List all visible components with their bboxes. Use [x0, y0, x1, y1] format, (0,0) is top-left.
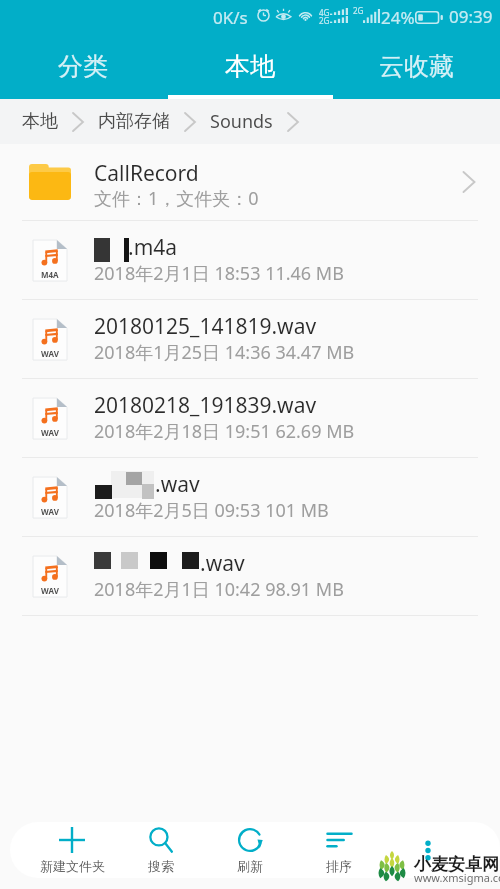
- staticText: 09:39: [449, 5, 493, 28]
- staticText: Sounds: [210, 109, 273, 134]
- staticText: 20180218_191839.wav: [94, 391, 317, 418]
- button[interactable]: CallRecord: [0, 144, 500, 221]
- button[interactable]: 搜索: [121, 822, 201, 878]
- staticText: WAV: [41, 427, 59, 438]
- staticText: WAV: [41, 348, 59, 359]
- button[interactable]: 内部存储: [98, 110, 170, 133]
- staticText: 排序: [326, 858, 352, 874]
- staticText: 新建文件夹: [40, 858, 105, 874]
- staticText: .wav: [200, 549, 245, 576]
- button[interactable]: 云收藏: [333, 33, 500, 99]
- button[interactable]: 更多: [410, 832, 446, 868]
- staticText: CallRecord: [94, 159, 199, 185]
- staticText: 20180125_141819.wav: [94, 312, 317, 339]
- staticText: M4A: [41, 269, 59, 280]
- staticText: 2018年2月1日 10:42 98.91 MB: [94, 577, 344, 602]
- button[interactable]: WAV: [0, 537, 500, 616]
- staticText: 4G: [319, 7, 330, 18]
- button[interactable]: 新建文件夹: [18, 822, 126, 878]
- staticText: www.xmsigma.com: [414, 870, 500, 885]
- staticText: 刷新: [237, 858, 263, 874]
- staticText: .m4a: [128, 233, 178, 260]
- button[interactable]: 分类: [0, 33, 166, 99]
- staticText: 文件：1，文件夹：0: [94, 186, 259, 211]
- button[interactable]: 本地: [22, 110, 58, 133]
- staticText: 2G: [319, 15, 330, 26]
- staticText: 内部存储: [98, 110, 170, 133]
- button[interactable]: WAV: [0, 300, 500, 379]
- staticText: 本地: [22, 110, 58, 133]
- button[interactable]: WAV: [0, 379, 500, 458]
- staticText: 2G: [353, 5, 364, 16]
- staticText: 分类: [58, 51, 108, 82]
- staticText: .wav: [155, 470, 200, 497]
- button[interactable]: 排序: [299, 822, 379, 878]
- staticText: 0K/s: [213, 6, 248, 29]
- staticText: 云收藏: [379, 51, 454, 82]
- button[interactable]: Sounds: [210, 109, 273, 134]
- staticText: 24%: [381, 6, 415, 29]
- button[interactable]: 刷新: [210, 822, 290, 878]
- staticText: 2018年2月5日 09:53 101 MB: [94, 498, 329, 523]
- staticText: 2018年2月1日 18:53 11.46 MB: [94, 261, 344, 286]
- button[interactable]: WAV: [0, 458, 500, 537]
- staticText: 搜索: [148, 858, 174, 874]
- staticText: 本地: [225, 51, 275, 82]
- staticText: 小麦安卓网: [414, 854, 499, 875]
- staticText: WAV: [41, 585, 59, 596]
- staticText: WAV: [41, 506, 59, 517]
- button[interactable]: M4A: [0, 221, 500, 300]
- button[interactable]: 本地: [166, 33, 333, 99]
- other: 打开: [456, 169, 482, 195]
- staticText: 2018年1月25日 14:36 34.47 MB: [94, 340, 355, 365]
- staticText: 2018年2月18日 19:51 62.69 MB: [94, 419, 355, 444]
